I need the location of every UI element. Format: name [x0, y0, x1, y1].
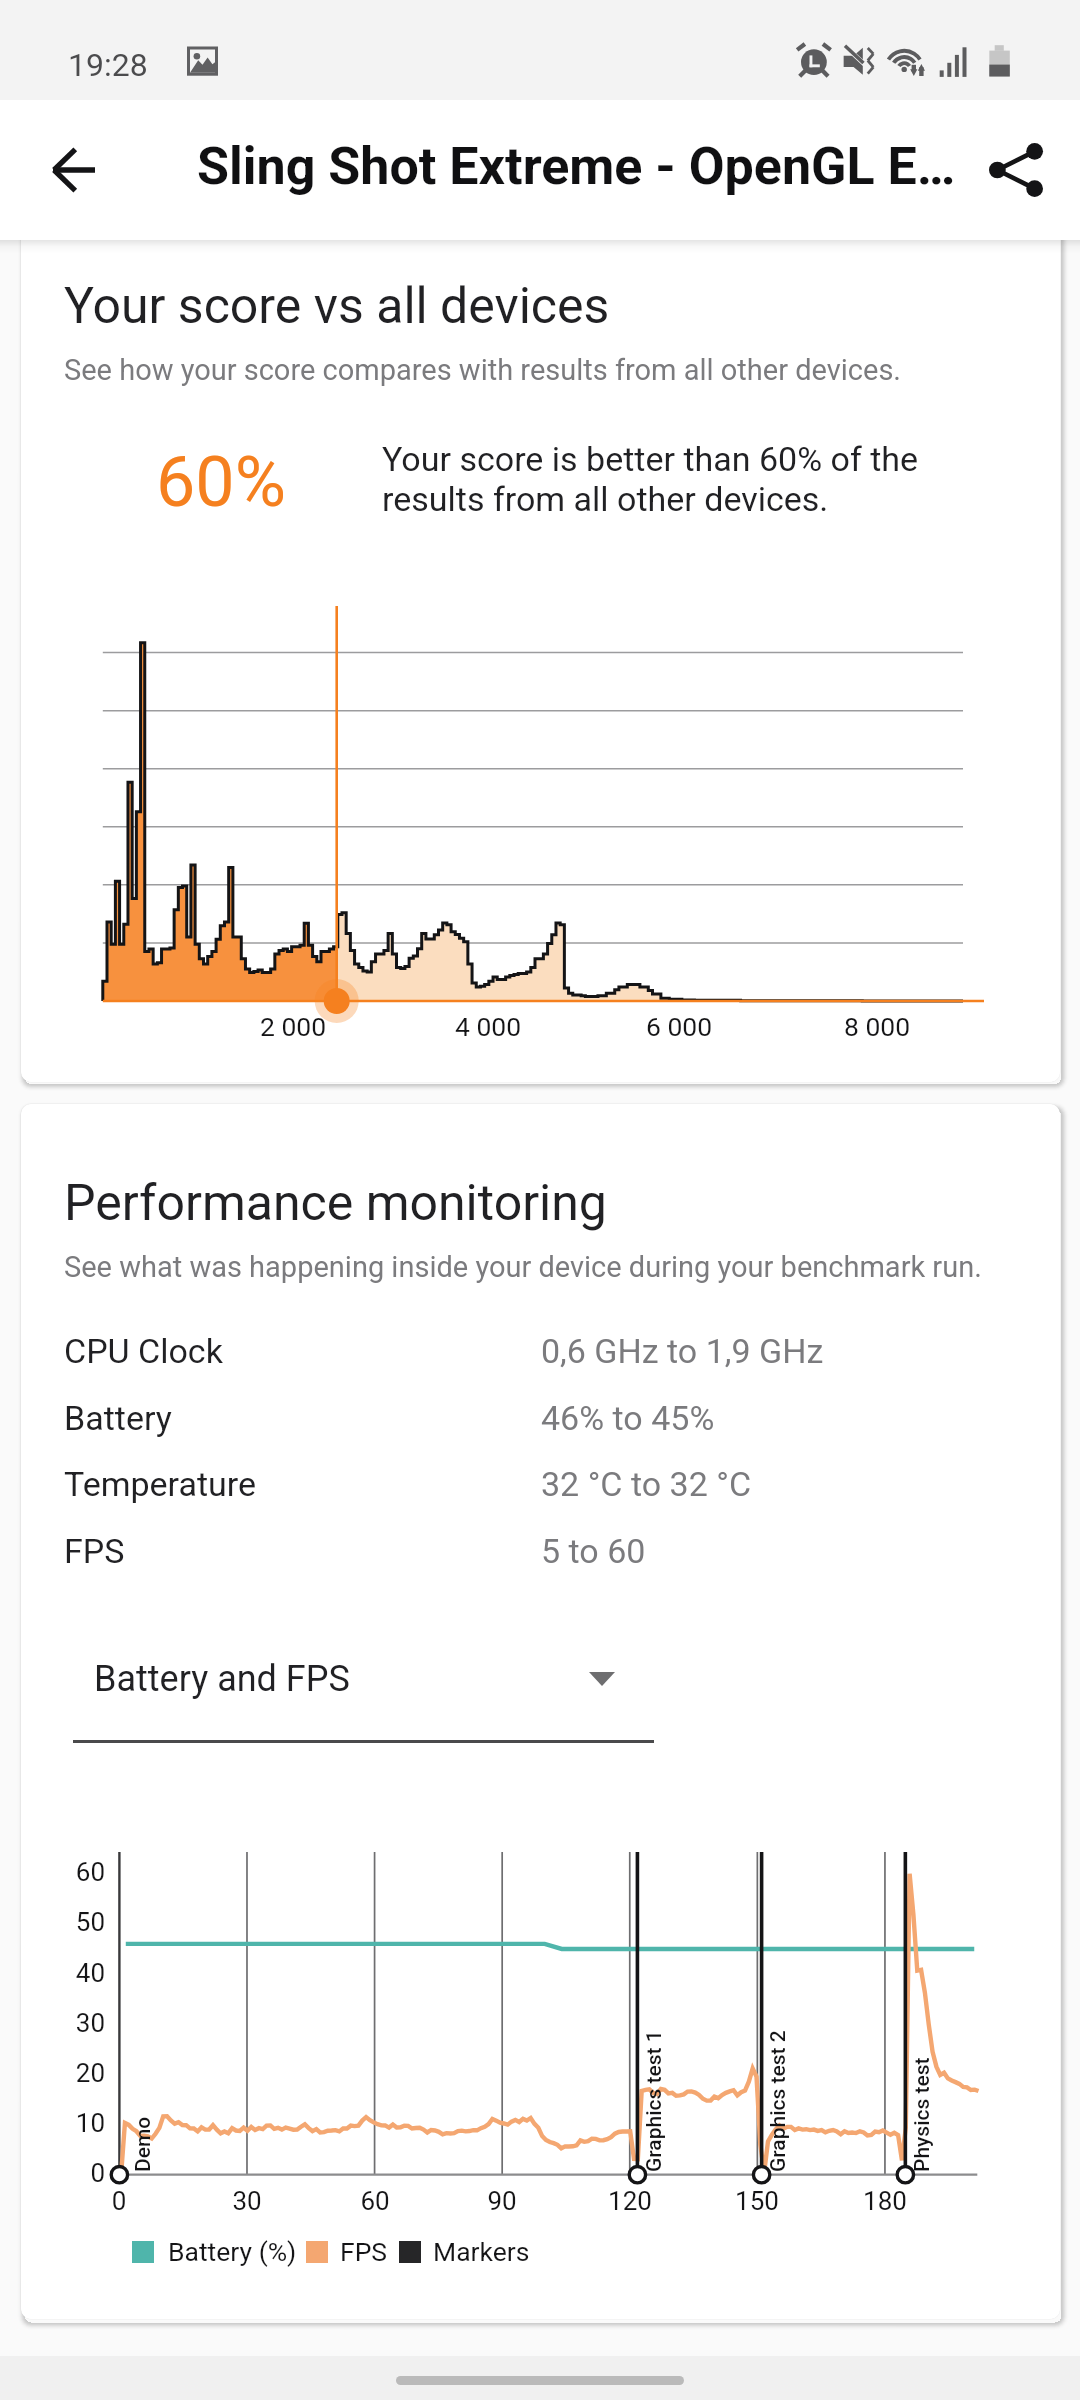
staticText: Graphics test 1 [642, 2030, 667, 2172]
staticText: Your score vs all devices [64, 277, 610, 336]
staticText: 30 [147, 2186, 347, 2216]
staticText: 40 [21, 1958, 105, 1988]
staticText: 120 [530, 2186, 730, 2216]
staticText: 50 [21, 1907, 105, 1937]
staticText: 10 [21, 2108, 105, 2138]
staticText: FPS [64, 1531, 125, 1571]
staticText: 6 000 [531, 1011, 827, 1042]
staticText: Graphics test 2 [766, 2030, 791, 2172]
button[interactable]: Share [970, 124, 1062, 216]
staticText: See how your score compares with results… [64, 353, 902, 387]
staticText: 0,6 GHz to 1,9 GHz [541, 1331, 824, 1371]
staticText: Temperature [64, 1464, 257, 1504]
staticText: See what was happening inside your devic… [64, 1250, 982, 1284]
staticText: Demo [131, 2116, 156, 2172]
button[interactable]: FPS [21, 1513, 1060, 1580]
staticText: Battery and FPS [94, 1658, 350, 1700]
staticText: 0 [21, 2158, 105, 2188]
staticText: Your score is better than 60% of the res… [382, 439, 927, 519]
staticText: Sling Shot Extreme - OpenGL E… [197, 136, 956, 197]
staticText: 32 °C to 32 °C [541, 1464, 752, 1504]
staticText: 150 [657, 2186, 857, 2216]
button[interactable]: CPU Clock [21, 1313, 1060, 1380]
staticText: 2 000 [145, 1011, 441, 1042]
button[interactable]: Temperature [21, 1446, 1060, 1513]
staticText: 30 [21, 2008, 105, 2038]
button[interactable]: Back [26, 122, 122, 218]
staticText: 20 [21, 2058, 105, 2088]
staticText: 60 [275, 2186, 475, 2216]
staticText: Battery (%) [168, 2236, 297, 2267]
button[interactable]: Battery and FPS chart selector [73, 1632, 654, 1716]
staticText: 8 000 [729, 1011, 1025, 1042]
staticText: 46% to 45% [541, 1398, 715, 1438]
button[interactable]: Battery [21, 1380, 1060, 1447]
staticText: 60% [156, 441, 286, 523]
staticText: 60 [21, 1857, 105, 1887]
staticText: 90 [402, 2186, 602, 2216]
staticText: 180 [785, 2186, 985, 2216]
staticText: Physics test [910, 2057, 935, 2172]
staticText: CPU Clock [64, 1331, 223, 1371]
staticText: 19:28 [68, 46, 148, 84]
staticText: Performance monitoring [64, 1174, 607, 1233]
staticText: Battery [64, 1398, 172, 1438]
staticText: 5 to 60 [541, 1531, 646, 1571]
staticText: Markers [433, 2236, 530, 2267]
staticText: FPS [340, 2236, 388, 2267]
staticText: 4 000 [340, 1011, 636, 1042]
staticText: 0 [21, 2186, 219, 2216]
